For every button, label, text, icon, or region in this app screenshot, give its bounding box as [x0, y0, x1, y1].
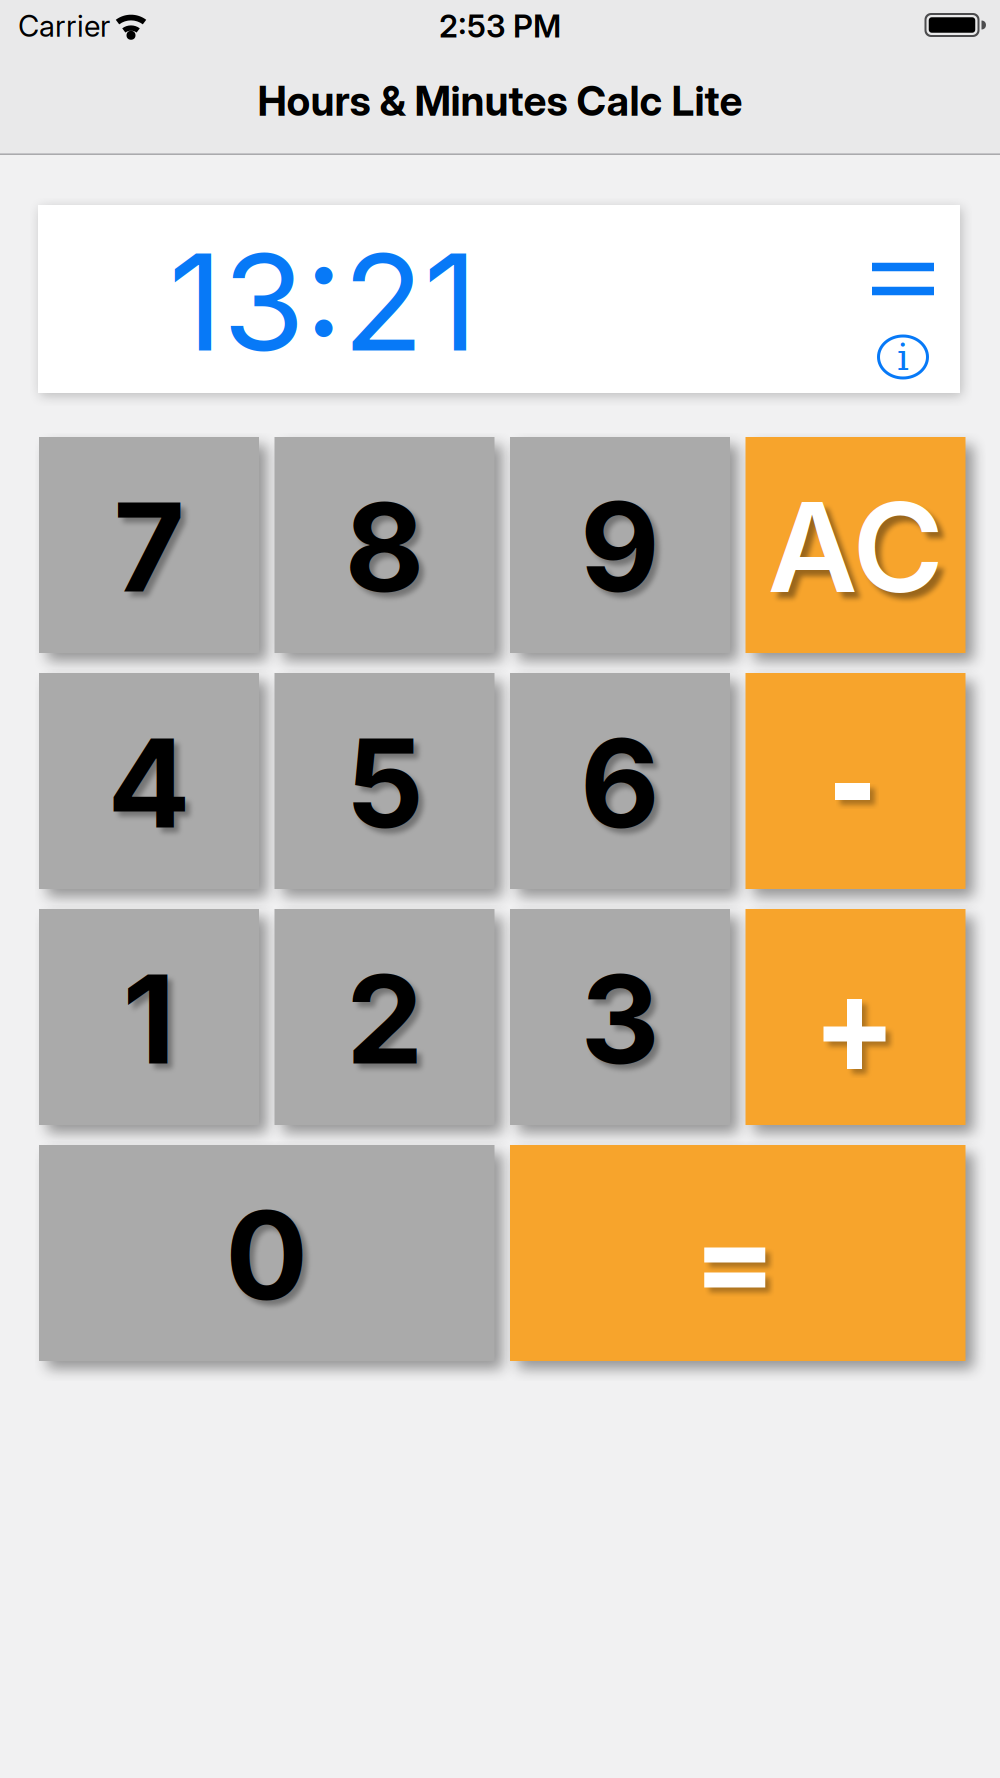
staticText: AC — [767, 472, 943, 622]
button[interactable]: Plus — [745, 909, 965, 1125]
staticText: 2 — [346, 945, 423, 1093]
staticText: 0 — [225, 1181, 308, 1329]
staticText: Carrier — [18, 8, 110, 44]
button[interactable]: 8 — [274, 437, 494, 653]
staticText: 1 — [122, 945, 175, 1093]
button[interactable]: 3 — [510, 909, 730, 1125]
button[interactable]: 7 — [39, 437, 259, 653]
button[interactable]: 2 — [274, 909, 494, 1125]
button[interactable]: 4 — [39, 673, 259, 889]
staticText: 4 — [107, 709, 190, 857]
staticText: 3 — [580, 945, 659, 1093]
button[interactable]: 0 — [39, 1145, 494, 1361]
staticText: 8 — [344, 473, 424, 621]
staticText: 9 — [580, 473, 660, 621]
button[interactable]: 5 — [274, 673, 494, 889]
staticText: 6 — [580, 709, 660, 857]
button[interactable]: Info — [877, 334, 929, 379]
button[interactable]: Minus — [745, 673, 965, 889]
button[interactable]: 6 — [510, 673, 730, 889]
button[interactable]: Equals — [510, 1145, 965, 1361]
staticText: 13:21 — [168, 221, 477, 383]
staticText: 5 — [345, 709, 423, 857]
button[interactable]: 9 — [510, 437, 730, 653]
button[interactable]: 1 — [39, 909, 259, 1125]
button[interactable]: AC — [745, 437, 965, 653]
staticText: 7 — [113, 473, 184, 621]
staticText: 2:53 PM — [439, 7, 561, 45]
staticText: i — [897, 335, 909, 379]
staticText: Hours & Minutes Calc Lite — [257, 76, 742, 126]
